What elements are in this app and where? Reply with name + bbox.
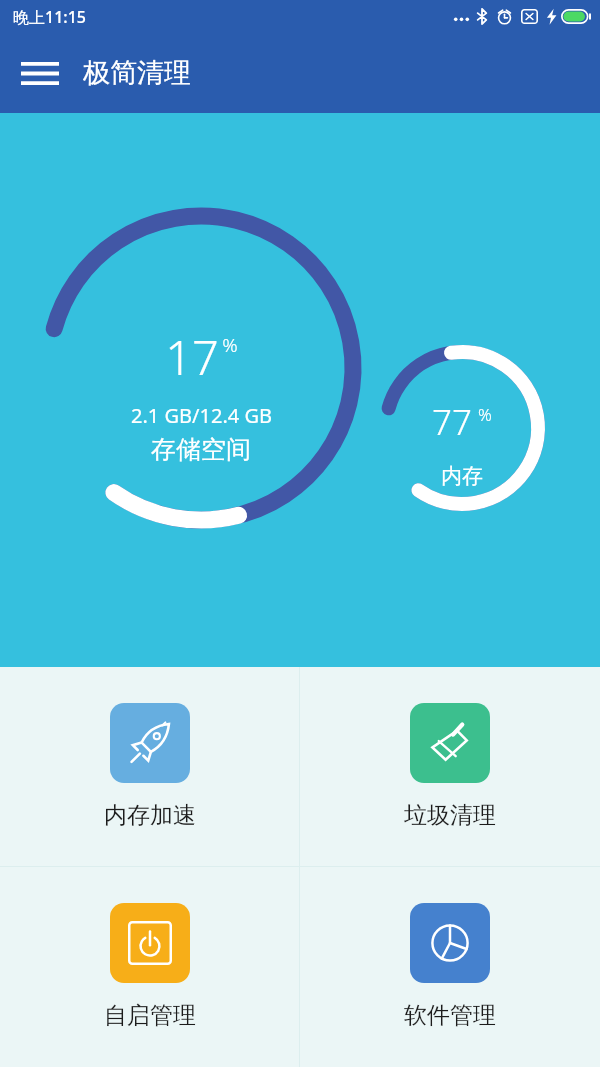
staticText: 软件管理	[404, 1001, 496, 1030]
staticText: 垃圾清理	[404, 801, 496, 830]
staticText: 内存	[441, 463, 483, 489]
button[interactable]: Open navigation menu	[8, 41, 72, 105]
staticText: 77	[432, 398, 472, 446]
button[interactable]: 软件管理	[300, 867, 600, 1067]
staticText: 自启管理	[104, 1001, 196, 1030]
staticText: 内存加速	[104, 801, 196, 830]
staticText: 17	[165, 325, 219, 389]
button[interactable]: 内存加速	[0, 667, 299, 866]
button[interactable]: 自启管理	[0, 867, 299, 1067]
staticText: 存储空间	[151, 434, 251, 465]
button[interactable]: 垃圾清理	[300, 667, 600, 866]
staticText: 极简清理	[83, 56, 191, 90]
staticText: %	[478, 403, 492, 426]
staticText: 晚上11:15	[13, 6, 86, 28]
staticText: %	[222, 332, 238, 358]
staticText: 2.1 GB/12.4 GB	[131, 402, 272, 429]
